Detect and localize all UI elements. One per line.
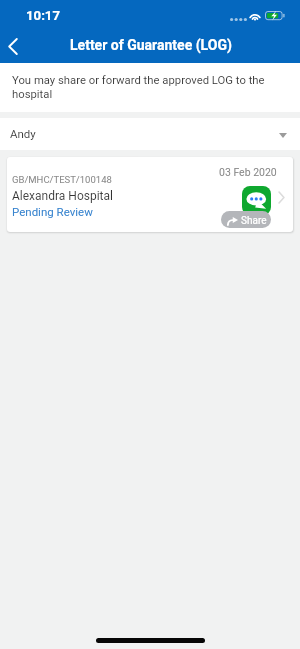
staticText: 10:17 xyxy=(26,8,60,23)
staticText: Share xyxy=(241,215,267,227)
staticText: 03 Feb 2020 xyxy=(219,166,277,178)
button[interactable]: Andy xyxy=(0,118,300,150)
button[interactable]: Message xyxy=(242,186,271,215)
staticText: GB/MHC/TEST/100148 xyxy=(12,174,112,185)
staticText: Alexandra Hospital xyxy=(12,189,113,203)
button[interactable]: Back xyxy=(0,28,32,63)
staticText: You may share or forward the approved LO… xyxy=(12,74,277,101)
button[interactable]: Share xyxy=(221,211,271,228)
staticText: Letter of Guarantee (LOG) xyxy=(70,37,232,53)
staticText: Pending Review xyxy=(12,205,93,218)
staticText: Andy xyxy=(10,127,36,140)
button[interactable]: GB/MHC/TEST/100148 xyxy=(7,157,293,232)
